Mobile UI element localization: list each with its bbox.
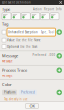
button[interactable]: Optional <box>2 45 62 49</box>
button[interactable]: Information <box>2 13 11 20</box>
staticText: Use the Stack <box>20 45 37 48</box>
staticText: OK <box>29 103 34 109</box>
button[interactable]: Error <box>21 13 30 20</box>
staticText: Process Trace <box>2 67 27 73</box>
staticText: Type, Tool <box>40 30 54 34</box>
staticText: Use the file Name <box>16 38 41 42</box>
staticText: Unhandled Exception <box>8 30 38 34</box>
button[interactable]: Add Process Trace <box>56 67 62 73</box>
button[interactable]: Trace <box>40 13 49 20</box>
staticText: Message <box>2 53 18 58</box>
button[interactable]: Debug <box>31 13 40 20</box>
staticText: Message <box>2 74 13 77</box>
button[interactable]: Add tag <box>56 29 62 35</box>
staticText: Type <box>2 6 10 12</box>
button[interactable]: Custom <box>50 13 59 20</box>
staticText: Platform <box>4 91 15 94</box>
staticText: Message <box>2 59 13 63</box>
button[interactable]: Preferred <box>19 90 37 95</box>
staticText: Value <box>7 38 15 42</box>
button[interactable]: Add color <box>56 90 62 95</box>
staticText: Action Report Info <box>33 7 62 11</box>
button[interactable]: Platform <box>2 90 17 95</box>
button[interactable]: Add Message <box>56 53 62 59</box>
staticText: Optional <box>7 45 19 48</box>
button[interactable]: Close <box>58 0 63 5</box>
button[interactable]: Value <box>2 38 62 42</box>
button[interactable]: OK <box>25 103 38 108</box>
staticText: Tag <box>2 21 8 27</box>
button[interactable]: Warning <box>12 13 21 20</box>
staticText: Edit Event Definition <box>2 1 31 4</box>
staticText: Preferred .000 <box>32 53 55 57</box>
staticText: Color <box>2 82 12 87</box>
staticText: Tag already in use <box>4 97 28 101</box>
staticText: Preferred <box>21 91 35 94</box>
